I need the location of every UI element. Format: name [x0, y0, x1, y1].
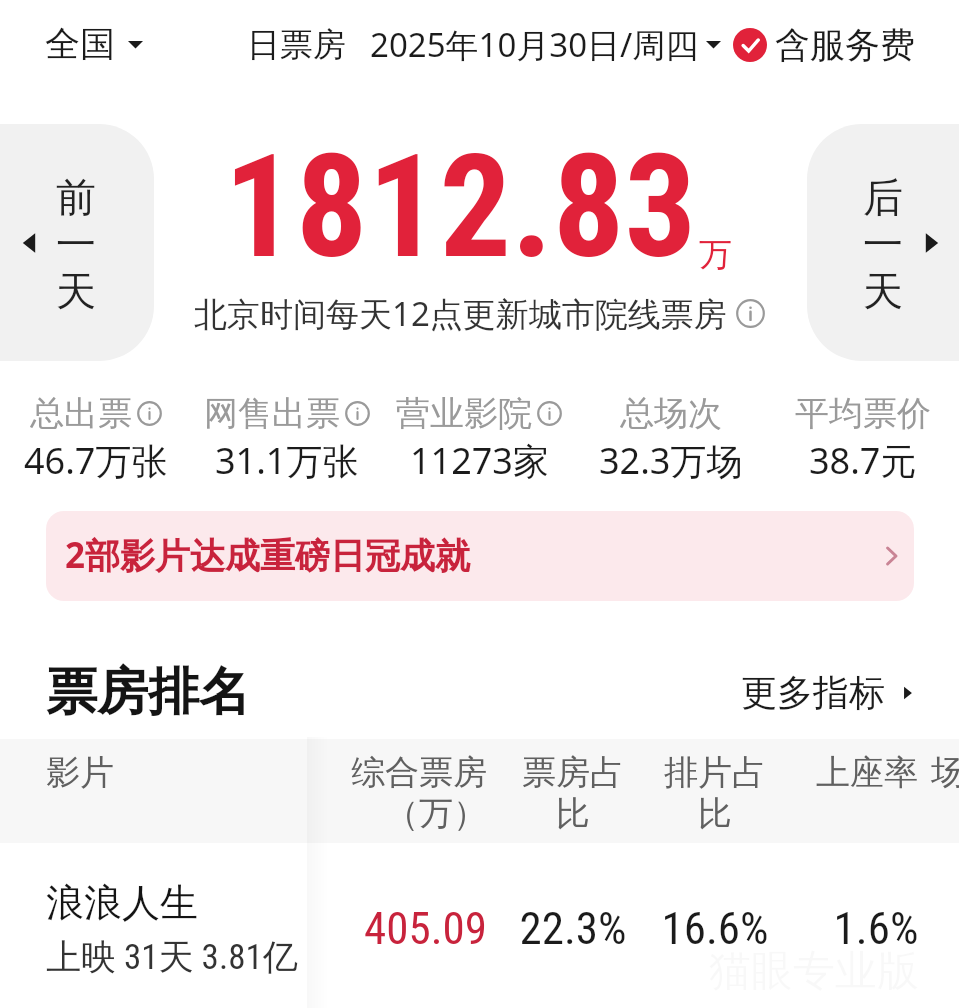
staticText: 票房排名 [46, 660, 250, 724]
button[interactable]: 说明 [736, 299, 765, 328]
button[interactable]: 含服务费 [733, 23, 915, 67]
button[interactable]: 前 [0, 124, 154, 361]
button[interactable]: 浪浪人生 [0, 843, 959, 1003]
staticText: 天 [863, 266, 903, 313]
button[interactable]: 平均票价 [767, 392, 959, 485]
button[interactable]: 全国 [45, 22, 144, 66]
staticText: 38.7元 [809, 436, 917, 485]
staticText: 综合票房 （万） [267, 751, 487, 835]
staticText: 天 [56, 266, 96, 313]
staticText: 含服务费 [775, 23, 915, 67]
button[interactable]: 更多指标 [741, 670, 915, 715]
staticText: 平均票价 [795, 392, 931, 435]
staticText: 总场次 [620, 392, 722, 435]
staticText: 全国 [45, 22, 115, 66]
staticText: 浪浪人生 [46, 879, 198, 927]
button[interactable]: 营业影院 [383, 392, 575, 485]
staticText: 影片 [46, 751, 114, 794]
staticText: 1.6% [796, 902, 956, 955]
staticText: 1812.83 [224, 124, 697, 290]
staticText: 一 [863, 219, 903, 266]
staticText: 总出票 [30, 392, 132, 435]
button[interactable]: 后 [807, 124, 959, 361]
staticText: 后 [863, 172, 903, 219]
staticText: 405.09 [267, 902, 487, 955]
staticText: 北京时间每天12点更新城市院线票房 [194, 291, 727, 336]
staticText: 16.6% [635, 902, 795, 955]
staticText: 万 [699, 234, 732, 276]
staticText: 31.1万张 [215, 436, 359, 485]
staticText: 网售出票 [204, 392, 340, 435]
button[interactable]: 总场次 [575, 392, 767, 485]
staticText: 32.3万场 [599, 436, 743, 485]
staticText: 排片占 比 [635, 751, 795, 835]
staticText: 前 [56, 172, 96, 219]
button[interactable]: 2025年10月30日/周四 [370, 22, 722, 67]
staticText: 票房占 比 [493, 751, 653, 835]
staticText: 11273家 [410, 436, 549, 485]
button[interactable]: 网售出票 [191, 392, 383, 485]
staticText: 46.7万张 [24, 436, 168, 485]
staticText: 场 [931, 751, 959, 794]
staticText: 上座率 [787, 751, 947, 794]
staticText: 2025年10月30日/周四 [370, 22, 699, 67]
staticText: 2部影片达成重磅日冠成就 [65, 531, 471, 579]
staticText: 22.3% [493, 902, 653, 955]
staticText: 上映 31天 3.81亿 [46, 935, 298, 979]
staticText: 更多指标 [741, 670, 885, 715]
button[interactable]: 2部影片达成重磅日冠成就 [46, 511, 914, 601]
staticText: 日票房 [247, 24, 346, 66]
staticText: 一 [56, 219, 96, 266]
staticText: 营业影院 [396, 392, 532, 435]
button[interactable]: 总出票 [0, 392, 191, 485]
